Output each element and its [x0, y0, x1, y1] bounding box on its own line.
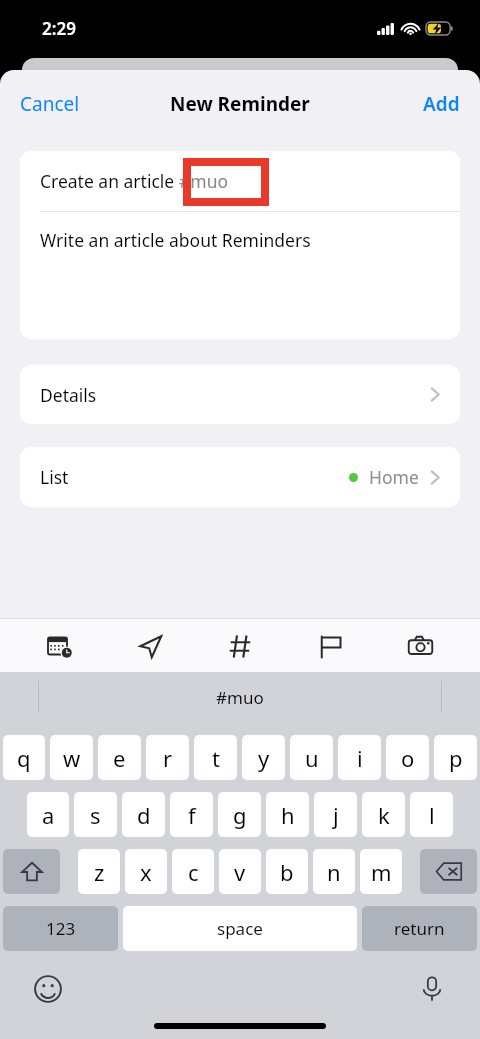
staticText: r: [163, 743, 173, 773]
staticText: k: [378, 800, 390, 830]
staticText: Home: [369, 465, 419, 489]
staticText: Write an article about Reminders: [40, 228, 311, 252]
button[interactable]: i: [338, 735, 381, 780]
button[interactable]: p: [434, 735, 477, 780]
staticText: New Reminder: [170, 91, 310, 117]
button[interactable]: z: [78, 849, 120, 894]
button[interactable]: e: [98, 735, 141, 780]
staticText: t: [212, 743, 220, 773]
staticText: z: [94, 857, 105, 887]
staticText: 123: [46, 917, 76, 940]
button[interactable]: Write an article about Reminders: [20, 212, 460, 268]
button[interactable]: h: [266, 792, 309, 837]
button[interactable]: g: [218, 792, 261, 837]
staticText: n: [327, 857, 341, 887]
button[interactable]: j: [314, 792, 357, 837]
button[interactable]: d: [122, 792, 165, 837]
staticText: h: [281, 800, 295, 830]
staticText: w: [63, 743, 81, 773]
button[interactable]: t: [194, 735, 237, 780]
staticText: i: [357, 743, 363, 773]
staticText: List: [40, 465, 69, 489]
button[interactable]: Add date: [38, 624, 82, 668]
button[interactable]: v: [219, 849, 261, 894]
button[interactable]: b: [266, 849, 308, 894]
button[interactable]: a: [27, 792, 69, 837]
button[interactable]: Backspace: [420, 849, 477, 894]
button[interactable]: w: [50, 735, 93, 780]
staticText: return: [394, 917, 445, 940]
button[interactable]: s: [74, 792, 117, 837]
staticText: j: [333, 800, 339, 830]
button[interactable]: m: [360, 849, 402, 894]
button[interactable]: Cancel: [0, 81, 96, 127]
button[interactable]: l: [410, 792, 453, 837]
button[interactable]: y: [242, 735, 285, 780]
button[interactable]: k: [362, 792, 405, 837]
button[interactable]: Flag: [308, 624, 352, 668]
button[interactable]: c: [172, 849, 214, 894]
button[interactable]: Add: [407, 81, 480, 127]
staticText: g: [233, 800, 247, 830]
button[interactable]: r: [146, 735, 189, 780]
staticText: #muo: [179, 169, 229, 193]
button[interactable]: space: [123, 906, 357, 951]
staticText: o: [401, 743, 415, 773]
staticText: d: [137, 800, 151, 830]
staticText: e: [113, 743, 126, 773]
button[interactable]: o: [386, 735, 429, 780]
button[interactable]: n: [313, 849, 355, 894]
staticText: x: [140, 857, 152, 887]
staticText: q: [17, 743, 31, 773]
staticText: #muo: [216, 686, 264, 709]
button[interactable]: Dictation: [412, 969, 452, 1009]
button[interactable]: u: [290, 735, 333, 780]
staticText: a: [42, 800, 55, 830]
staticText: 2:29: [42, 17, 76, 40]
staticText: b: [280, 857, 294, 887]
staticText: Create an article: [40, 169, 179, 193]
staticText: Cancel: [20, 91, 80, 117]
staticText: u: [305, 743, 319, 773]
button[interactable]: return: [362, 906, 477, 951]
button[interactable]: List: [20, 447, 460, 507]
button[interactable]: Add tag: [218, 624, 262, 668]
staticText: p: [449, 743, 463, 773]
button[interactable]: Add location: [128, 624, 172, 668]
button[interactable]: x: [125, 849, 167, 894]
staticText: v: [234, 857, 246, 887]
button[interactable]: Shift: [3, 849, 60, 894]
staticText: m: [371, 857, 392, 887]
button[interactable]: Add photo: [398, 624, 442, 668]
button[interactable]: q: [3, 735, 45, 780]
button[interactable]: Details: [20, 365, 460, 424]
staticText: c: [188, 857, 199, 887]
button[interactable]: Create an article: [20, 151, 460, 211]
staticText: f: [188, 800, 196, 830]
button[interactable]: f: [170, 792, 213, 837]
staticText: s: [90, 800, 101, 830]
staticText: space: [217, 917, 263, 940]
button[interactable]: 123: [3, 906, 118, 951]
staticText: Add: [423, 91, 460, 117]
staticText: y: [258, 743, 270, 773]
staticText: Details: [40, 383, 97, 407]
staticText: l: [429, 800, 435, 830]
button[interactable]: Emoji: [28, 969, 68, 1009]
